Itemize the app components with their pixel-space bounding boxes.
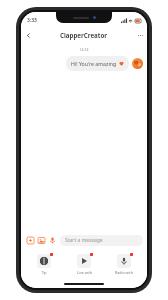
button[interactable]: Send photo (36, 235, 47, 246)
button[interactable]: Start a message (60, 235, 143, 246)
button[interactable]: Back (21, 28, 35, 42)
staticText: Tip (41, 270, 47, 275)
button[interactable]: Voice message (47, 235, 58, 246)
staticText: Radio with (115, 270, 133, 275)
button[interactable]: Live with (67, 254, 101, 275)
staticText: Hi! You're amazing (71, 60, 117, 67)
staticText: 3:33 (27, 17, 37, 24)
button[interactable]: Tip (27, 254, 61, 275)
staticText: ClapperCreator (60, 31, 108, 39)
staticText: Live with (77, 270, 92, 275)
button[interactable]: Hi! You're amazing (66, 56, 129, 71)
button[interactable]: Profile avatar (132, 58, 143, 69)
button[interactable]: Radio with (107, 254, 141, 275)
staticText: Start a message (65, 237, 103, 244)
staticText: 14:32 (21, 47, 147, 52)
button[interactable]: Add attachment (25, 235, 36, 246)
button[interactable]: More options (133, 28, 147, 42)
